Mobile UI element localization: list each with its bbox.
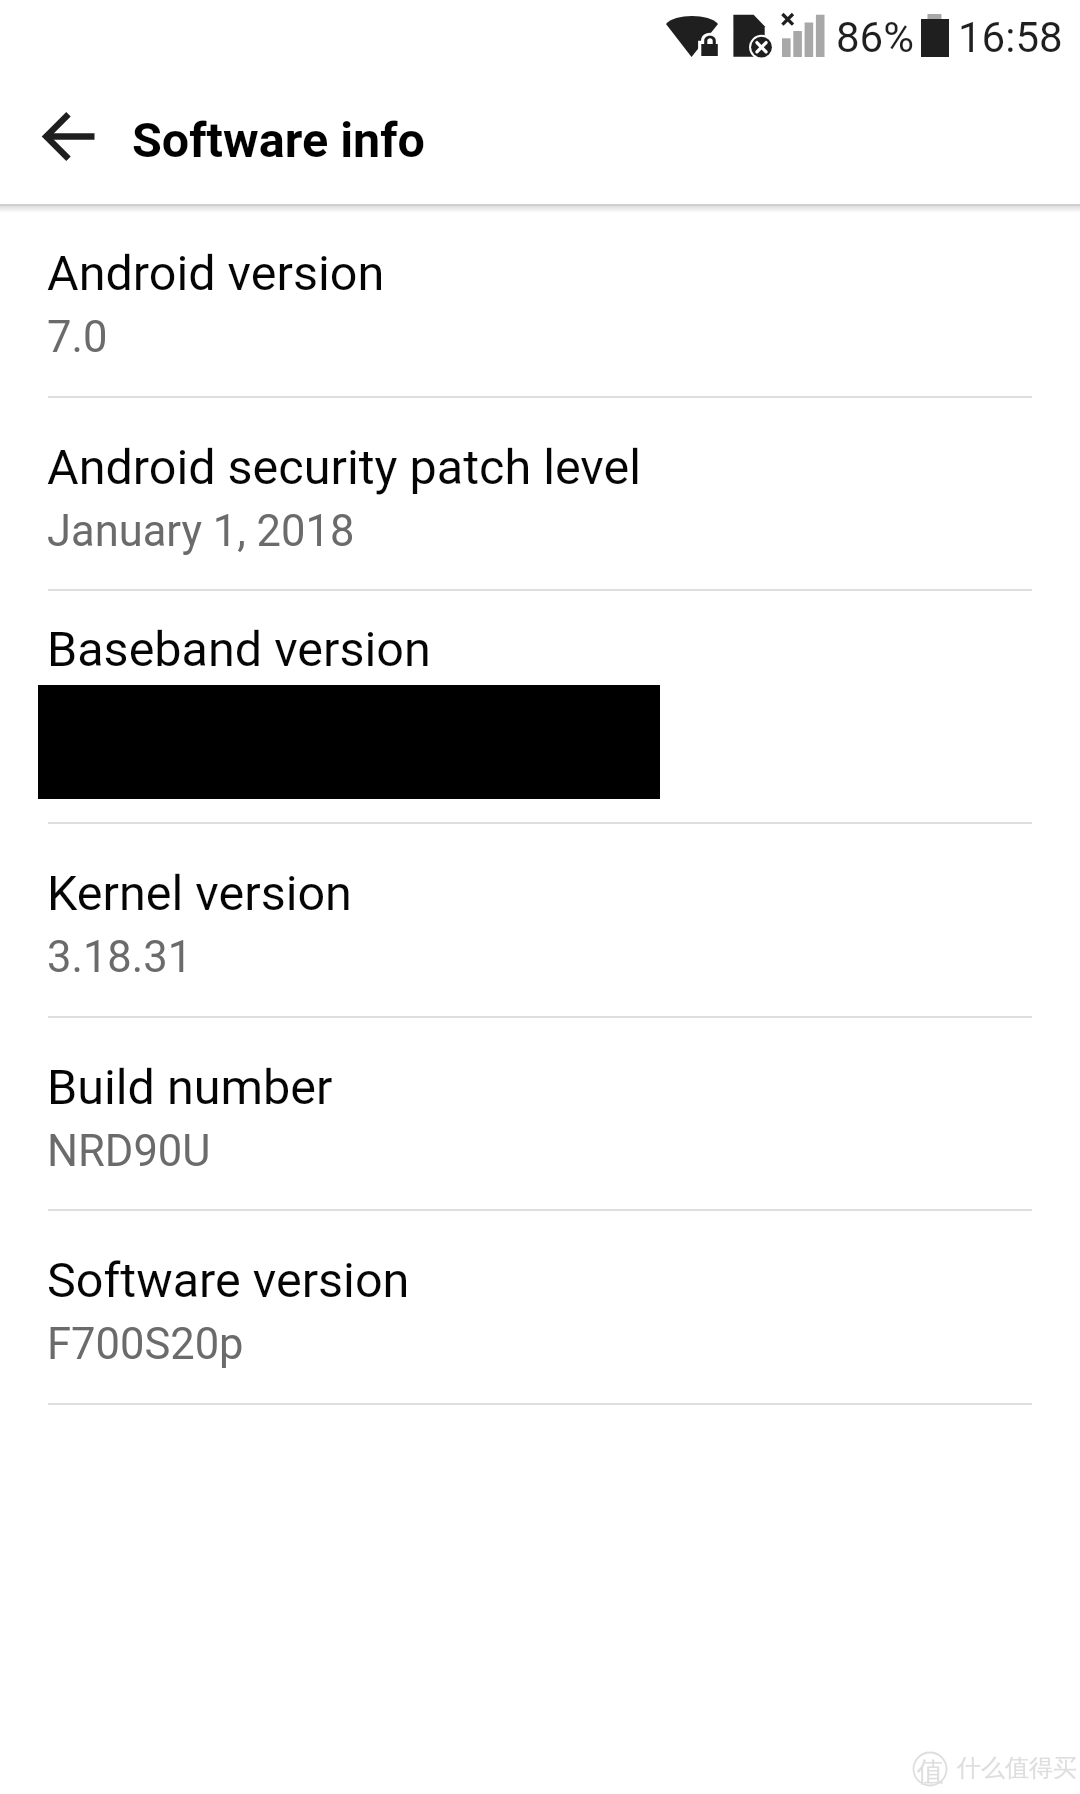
staticText: 什么值得买 (957, 1753, 1077, 1783)
staticText: Software info (132, 112, 426, 169)
button[interactable]: Software version (0, 1211, 1080, 1403)
staticText: F700S20p (47, 1319, 244, 1370)
staticText: Android version (47, 245, 385, 302)
staticText: Android security patch level (47, 439, 642, 496)
staticText: 86% (836, 13, 914, 62)
staticText: January 1, 2018 (47, 506, 355, 557)
staticText: Build number (47, 1059, 333, 1116)
button[interactable]: Build number (0, 1018, 1080, 1209)
staticText: Software version (47, 1252, 410, 1309)
staticText: 7.0 (47, 312, 108, 363)
staticText: NRD90U (47, 1126, 211, 1177)
button[interactable]: Kernel version (0, 824, 1080, 1016)
button[interactable]: Baseband version (0, 591, 1080, 822)
button[interactable]: Android security patch level (0, 398, 1080, 589)
button[interactable]: Back (24, 91, 114, 181)
staticText: Baseband version (47, 621, 431, 678)
staticText: 3.18.31 (47, 932, 193, 983)
staticText: 16:58 (958, 13, 1063, 62)
staticText: 值 (917, 1755, 944, 1789)
staticText: Kernel version (47, 865, 352, 922)
button[interactable]: Android version (0, 204, 1080, 396)
